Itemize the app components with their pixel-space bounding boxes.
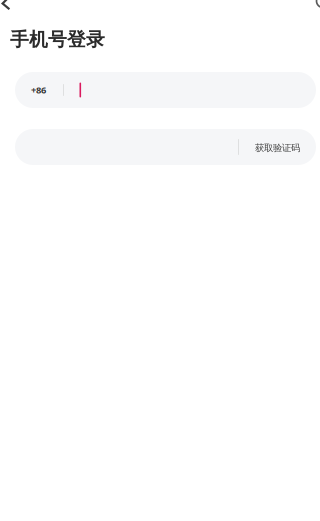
button[interactable]: Account bbox=[313, 0, 320, 11]
staticText: +86 bbox=[31, 84, 46, 96]
button[interactable]: +86 bbox=[15, 72, 63, 108]
button[interactable]: Phone number bbox=[64, 72, 315, 108]
staticText: 手机号登录 bbox=[10, 28, 105, 51]
button[interactable]: Back bbox=[0, 0, 22, 22]
staticText: 获取验证码 bbox=[255, 142, 300, 154]
button[interactable]: 获取验证码 bbox=[239, 130, 316, 166]
